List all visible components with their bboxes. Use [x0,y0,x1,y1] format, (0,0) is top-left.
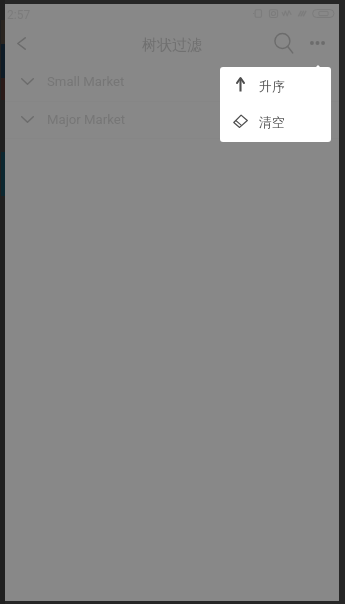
button[interactable]: More options [301,28,334,58]
button[interactable]: Major Market [5,100,339,138]
staticText: Major Market [47,112,126,127]
staticText: Small Market [47,74,125,89]
staticText: 升序 [259,78,285,94]
staticText: 2:57 [7,8,31,22]
staticText: 树状过滤 [142,36,202,55]
button[interactable]: Back [5,26,37,60]
button[interactable]: 清空 [220,104,331,140]
button[interactable]: Small Market [5,62,339,100]
button[interactable]: 升序 [220,68,331,104]
staticText: 清空 [259,114,285,130]
button[interactable]: Search [268,27,300,59]
